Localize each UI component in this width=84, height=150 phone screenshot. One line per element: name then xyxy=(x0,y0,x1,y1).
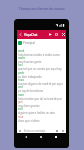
staticText: HispaChat xyxy=(24,33,38,37)
button[interactable]: Emoji xyxy=(18,129,22,133)
button[interactable]: Home xyxy=(39,135,43,139)
staticText: claro que si dime xyxy=(18,119,66,123)
staticText: alguien quiere hablar un rato conmigo ah… xyxy=(18,111,66,115)
staticText: sofi xyxy=(18,107,23,111)
staticText: que tal que se cuenta por aqui hoy dia a… xyxy=(18,67,66,71)
staticText: mari xyxy=(18,93,25,97)
button[interactable]: Rooms xyxy=(54,32,59,37)
staticText: pedr xyxy=(18,71,25,75)
staticText: hola buenas tardes a todos como estais h… xyxy=(18,53,66,57)
button[interactable]: Send xyxy=(61,129,65,133)
staticText: carl xyxy=(18,85,23,89)
button[interactable]: Back xyxy=(24,135,28,139)
button[interactable]: Recents xyxy=(54,135,58,139)
staticText: Principal xyxy=(23,41,35,45)
button[interactable]: Close xyxy=(61,32,66,37)
staticText: mafa xyxy=(18,56,25,60)
staticText: Chatea con clientes de usuario xyxy=(19,7,65,11)
staticText: buenas alguien de madrid por aqui esta t… xyxy=(18,82,66,86)
staticText: rosa xyxy=(18,78,24,82)
button[interactable]: Attach xyxy=(55,129,59,133)
button[interactable]: Principal xyxy=(18,39,66,46)
staticText: luci xyxy=(18,63,23,67)
staticText: yo bien trabajando xyxy=(18,75,66,79)
button[interactable]: Send xyxy=(48,32,53,37)
button[interactable]: Back xyxy=(17,30,66,39)
staticText: yo soy de barcelona xyxy=(18,89,66,93)
staticText: muy bien gracias xyxy=(18,104,66,108)
staticText: hola a todos que tal va la tarde por all… xyxy=(18,97,66,101)
staticText: anak xyxy=(18,49,25,53)
staticText: javi xyxy=(18,100,23,104)
other: Back xyxy=(18,32,23,37)
staticText: muy buenas gente xyxy=(18,60,66,64)
staticText: raul xyxy=(18,115,24,119)
staticText: Envia un mensaje xyxy=(24,129,46,133)
